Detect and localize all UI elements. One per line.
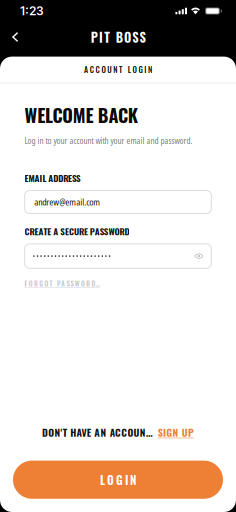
staticText: ACCOUNT LOGIN — [84, 64, 152, 75]
staticText: DON'T HAVE AN ACCOUNT? — [42, 425, 155, 440]
staticText: LOGIN — [100, 471, 136, 488]
staticText: andrew@email.com — [34, 196, 100, 208]
staticText: FORGOT PASSWORD? — [25, 278, 100, 288]
button[interactable]: FORGOT PASSWORD? — [25, 275, 100, 291]
staticText: PIT BOSS — [91, 28, 145, 46]
button[interactable]: LOGIN — [13, 461, 223, 499]
staticText: CREATE A SECURE PASSWORD — [25, 225, 129, 238]
staticText: 1:23 — [20, 4, 44, 18]
button[interactable]: Back — [3, 23, 27, 51]
staticText: SIGN UP — [158, 425, 194, 440]
staticText: WELCOME BACK — [25, 101, 138, 128]
staticText: Log in to your account with your email a… — [25, 135, 193, 146]
button[interactable]: Show password — [192, 251, 205, 261]
button[interactable]: SIGN UP — [158, 425, 194, 440]
staticText: EMAIL ADDRESS — [25, 171, 81, 185]
